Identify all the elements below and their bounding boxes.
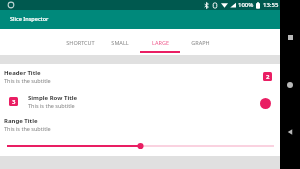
button[interactable]: Recents: [280, 27, 300, 47]
button[interactable]: GRAPH: [180, 29, 220, 55]
staticText: GRAPH: [191, 39, 210, 46]
staticText: Slice Inspector: [10, 15, 49, 22]
staticText: Header Title: [4, 69, 41, 77]
staticText: This is the subtitle: [4, 125, 51, 132]
staticText: 13:55: [263, 1, 279, 9]
staticText: Range Title: [4, 117, 38, 125]
staticText: 3: [12, 98, 16, 106]
staticText: 2: [266, 73, 270, 81]
staticText: 100%: [238, 1, 254, 9]
button[interactable]: LARGE: [140, 29, 180, 55]
staticText: SHORTCUT: [66, 39, 95, 46]
button[interactable]: SMALL: [100, 29, 140, 55]
button[interactable]: [0, 64, 280, 86]
staticText: SMALL: [111, 39, 129, 46]
staticText: LARGE: [152, 39, 169, 46]
staticText: Simple Row Title: [28, 94, 78, 102]
button[interactable]: SHORTCUT: [60, 29, 100, 55]
staticText: This is the subtitle: [28, 102, 75, 109]
button[interactable]: [0, 88, 280, 112]
button[interactable]: Back: [280, 122, 300, 142]
button[interactable]: Home: [280, 75, 300, 95]
staticText: This is the subtitle: [4, 77, 51, 84]
button[interactable]: [0, 139, 280, 153]
